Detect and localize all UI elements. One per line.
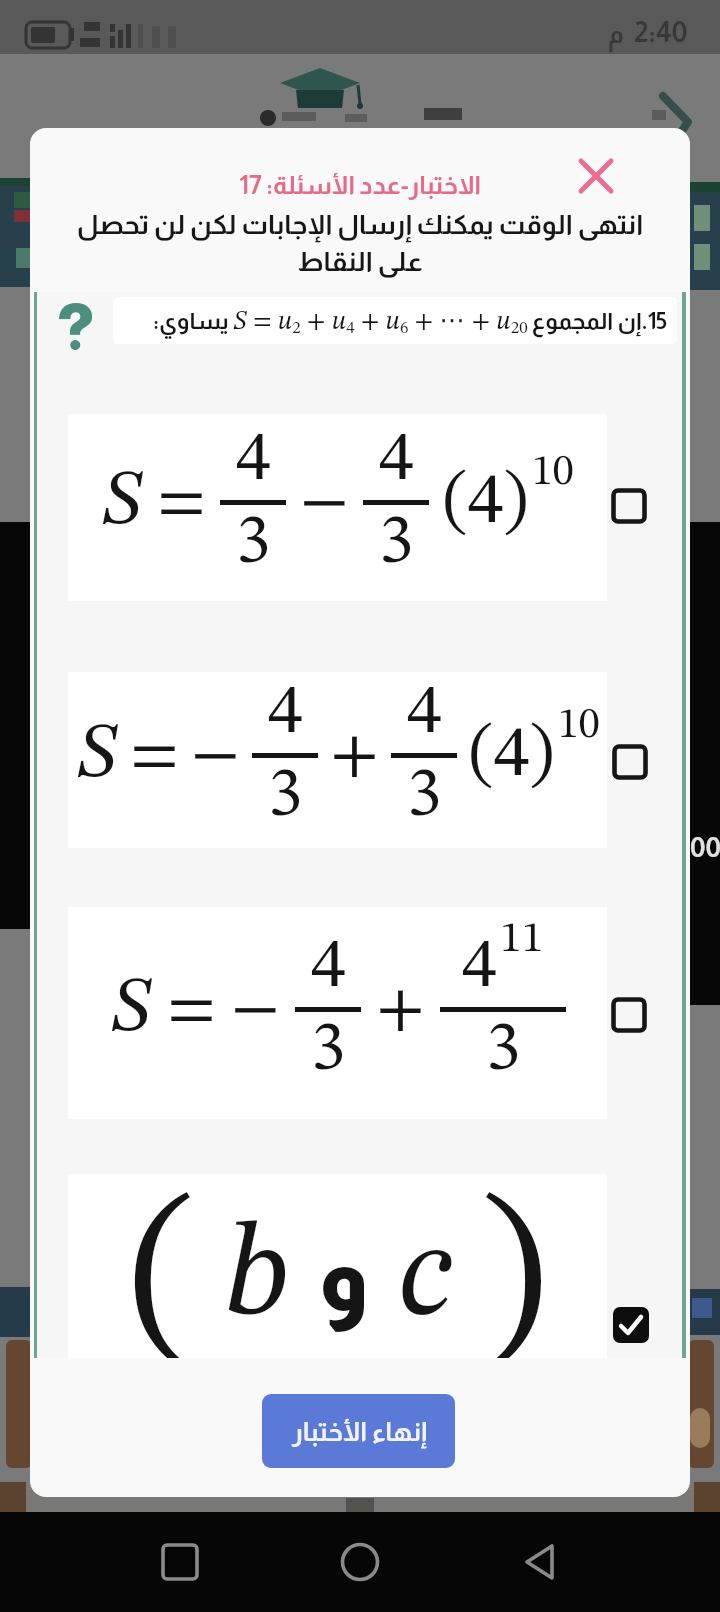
button[interactable]: 15.إن المجموع S = u2 + u4 + u6 + ⋯ + u20… [113, 297, 677, 344]
button[interactable] [612, 744, 648, 780]
staticText: 4 [236, 426, 271, 496]
staticText: 4 [268, 679, 303, 749]
staticText: ? [56, 292, 95, 363]
staticText: 3 [486, 1016, 521, 1086]
staticText: − [191, 722, 240, 790]
staticText: 3 [379, 509, 414, 579]
staticText: 10 [558, 705, 600, 747]
staticText: و [318, 1227, 370, 1330]
staticText: (4) [469, 720, 555, 792]
staticText: = [157, 469, 206, 537]
button[interactable]: إنهاء الأختبار [262, 1394, 455, 1468]
staticText: 10 [532, 452, 574, 494]
button[interactable]: ( [68, 1174, 607, 1358]
button[interactable]: S [68, 414, 607, 601]
staticText: م [608, 20, 624, 48]
staticText: 2:40 [634, 16, 688, 48]
staticText: 00 [690, 832, 720, 863]
staticText: S [101, 464, 143, 542]
staticText: S [110, 971, 152, 1049]
staticText: إنهاء الأختبار [291, 1417, 427, 1446]
button[interactable] [0, 1512, 240, 1612]
staticText: 11 [500, 917, 544, 961]
button[interactable] [613, 1307, 649, 1343]
staticText: 4 [407, 679, 442, 749]
staticText: 4 [462, 933, 497, 1003]
staticText: ( [129, 1186, 196, 1358]
staticText: 4 [379, 426, 414, 496]
button[interactable] [611, 997, 647, 1033]
button[interactable] [240, 1512, 480, 1612]
staticText: (4) [443, 467, 529, 539]
staticText: 3 [311, 1016, 346, 1086]
staticText: 3 [268, 762, 303, 832]
staticText: b [224, 1212, 290, 1344]
button[interactable] [574, 154, 618, 198]
button[interactable]: S [68, 907, 607, 1119]
staticText: = [167, 976, 216, 1044]
staticText: c [398, 1212, 452, 1344]
staticText: 3 [236, 509, 271, 579]
staticText: 4 [311, 933, 346, 1003]
staticText: − [231, 976, 280, 1044]
staticText: 3 [407, 762, 442, 832]
staticText: 15.إن المجموع S = u2 + u4 + u6 + ⋯ + u20… [123, 305, 667, 337]
staticText: + [376, 976, 425, 1044]
button[interactable]: S [68, 672, 607, 848]
staticText: انتهى الوقت يمكنك إرسال الإجابات لكن لن … [30, 210, 690, 277]
button[interactable] [611, 488, 647, 524]
button[interactable] [480, 1512, 720, 1612]
staticText: ) [480, 1186, 547, 1358]
staticText: S [76, 717, 118, 795]
staticText: الاختبار-عدد الأسئلة: 17 [30, 171, 690, 199]
staticText: + [330, 722, 379, 790]
staticText: − [300, 469, 349, 537]
staticText: = [130, 722, 179, 790]
